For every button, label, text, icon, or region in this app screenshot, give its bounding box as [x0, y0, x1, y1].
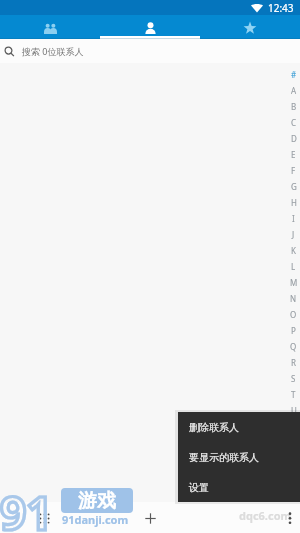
staticText: 12:43 [268, 1, 294, 15]
staticText: R [291, 357, 296, 368]
staticText: 91 [0, 481, 53, 533]
staticText: N [290, 293, 297, 304]
button[interactable]: All contacts [100, 15, 200, 39]
staticText: I [292, 213, 295, 224]
staticText: dqc6.com [239, 508, 292, 523]
staticText: 设置 [189, 481, 209, 494]
button[interactable]: Contacts groups [0, 15, 100, 39]
staticText: T [291, 389, 296, 400]
staticText: 游戏 [78, 489, 116, 513]
button[interactable]: Add contact [137, 505, 163, 531]
staticText: C [291, 117, 297, 128]
staticText: Q [290, 341, 297, 352]
staticText: U [291, 405, 297, 416]
staticText: G [291, 181, 297, 192]
button[interactable]: 要显示的联系人 [178, 442, 300, 472]
staticText: B [291, 101, 297, 112]
staticText: P [291, 325, 296, 336]
staticText: 搜索 0位联系人 [22, 45, 84, 57]
button[interactable]: 删除联系人 [178, 412, 300, 442]
staticText: K [291, 245, 296, 256]
staticText: # [291, 69, 297, 80]
button[interactable]: More options [278, 506, 300, 530]
staticText: 删除联系人 [189, 421, 239, 434]
staticText: D [291, 133, 297, 144]
button[interactable]: Favorites [200, 15, 300, 39]
staticText: M [290, 277, 298, 288]
staticText: H [291, 197, 297, 208]
staticText: S [291, 373, 296, 384]
staticText: 91danji.com [62, 512, 129, 527]
staticText: F [291, 165, 296, 176]
staticText: O [290, 309, 297, 320]
staticText: L [291, 261, 296, 272]
staticText: E [291, 149, 296, 160]
button[interactable]: 设置 [178, 472, 300, 502]
staticText: 要显示的联系人 [189, 451, 259, 464]
button[interactable]: Dialpad [32, 506, 56, 530]
button[interactable]: 搜索 0位联系人 [0, 39, 300, 63]
staticText: J [292, 229, 295, 240]
staticText: A [291, 85, 297, 96]
button[interactable]: Alphabet index [287, 63, 300, 502]
